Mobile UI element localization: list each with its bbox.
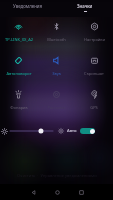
staticText: Уведомления [13,3,43,9]
staticText: Значки [77,3,93,9]
button[interactable]: Bluetooth [37,14,75,48]
button[interactable]: Back [25,184,41,200]
button[interactable]: GPS [75,82,113,116]
button[interactable]: Recents [73,184,89,200]
staticText: Авто [67,128,77,134]
button[interactable]: Настройки [75,14,113,48]
staticText: GPS [90,105,98,110]
staticText: Настройки [84,37,105,42]
staticText: Автоповорот [6,71,32,76]
staticText: Очистить · Управление уведомлениями [17,173,97,178]
button[interactable]: Звук [37,48,75,82]
button[interactable]: TP-LINK_XX_A2 [0,14,37,48]
staticText: Bluetooth [47,37,66,42]
button[interactable]: Значки [56,0,113,14]
staticText: Звук [52,71,61,76]
button[interactable]: Фонарик [0,82,37,116]
button[interactable]: Рассылка [37,82,75,116]
button[interactable]: Автоповорот [0,48,37,82]
button[interactable]: Скриншот [75,48,113,82]
button[interactable]: Home [49,184,65,200]
staticText: Скриншот [84,71,104,76]
staticText: Фонарик [10,105,28,110]
staticText: TP-LINK_XX_A2 [5,37,33,42]
button[interactable]: Уведомления [0,0,56,14]
button[interactable] [80,128,95,134]
